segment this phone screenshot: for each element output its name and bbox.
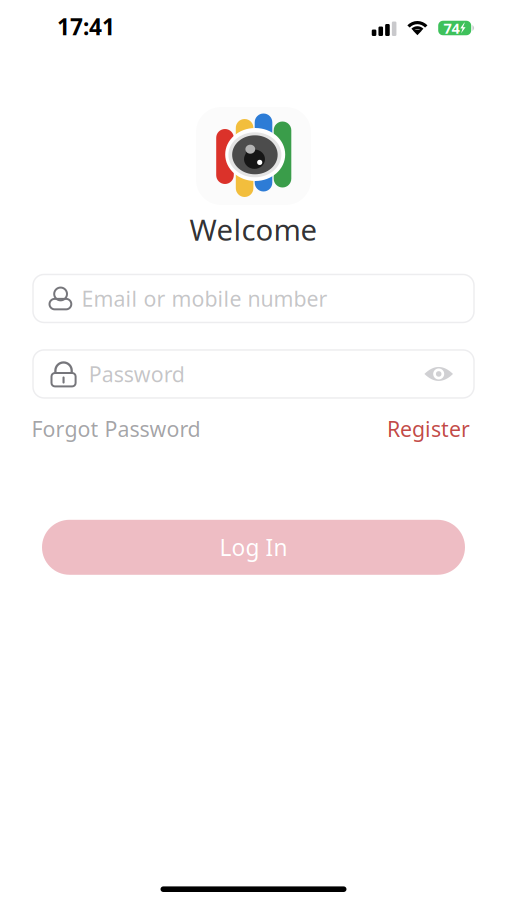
button[interactable]: Forgot Password (31, 414, 200, 443)
staticText: Register (387, 414, 470, 443)
staticText: Email or mobile number (81, 284, 327, 313)
staticText: Log In (219, 532, 287, 562)
staticText: Forgot Password (31, 414, 200, 443)
button[interactable]: Log In (42, 520, 465, 575)
staticText: 17:41 (57, 11, 115, 41)
staticText: Password (89, 360, 185, 388)
button[interactable]: Register (387, 414, 470, 443)
staticText: Welcome (189, 210, 317, 249)
button[interactable]: Show password (424, 366, 453, 382)
staticText: 74 (443, 18, 459, 38)
